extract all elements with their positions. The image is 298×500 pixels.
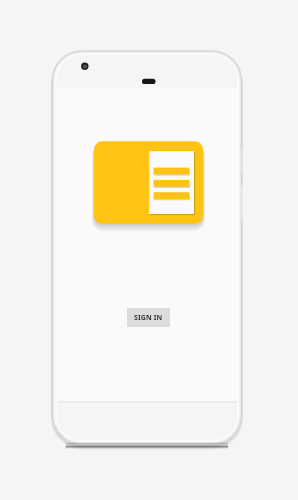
staticText: SIGN IN [134,313,163,323]
button[interactable]: SIGN IN [127,308,170,327]
